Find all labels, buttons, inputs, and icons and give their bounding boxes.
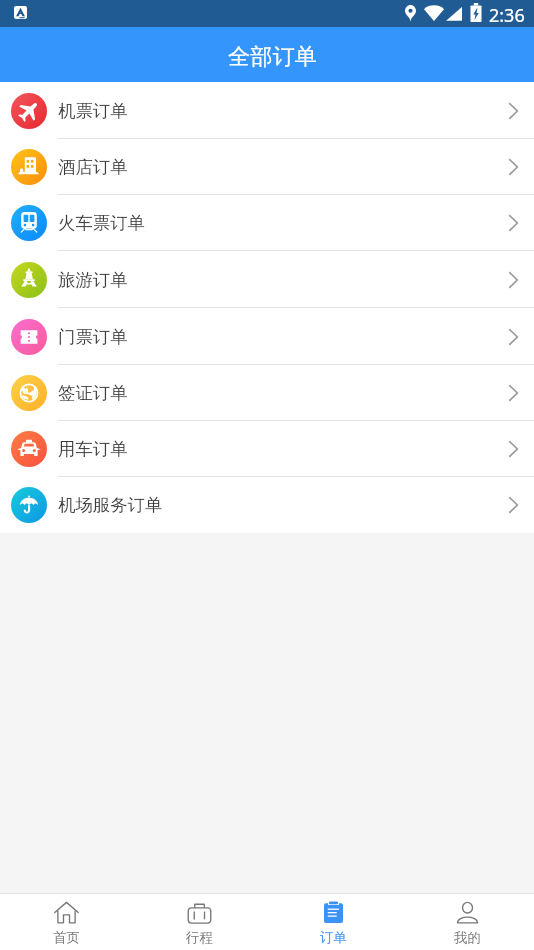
staticText: 全部订单 — [228, 43, 317, 71]
staticText: 用车订单 — [58, 438, 128, 460]
staticText: 门票订单 — [58, 326, 128, 348]
staticText: 订单 — [320, 929, 347, 946]
staticText: 2:36 — [489, 3, 525, 28]
staticText: 酒店订单 — [58, 156, 128, 178]
button[interactable]: 机票订单 — [0, 82, 534, 139]
button[interactable]: 旅游订单 — [0, 251, 534, 308]
staticText: 机场服务订单 — [58, 494, 163, 516]
staticText: 机票订单 — [58, 100, 128, 122]
button[interactable]: 酒店订单 — [0, 139, 534, 195]
staticText: 行程 — [186, 929, 213, 946]
staticText: 首页 — [53, 929, 80, 946]
button[interactable]: 行程 — [133, 894, 266, 950]
staticText: 签证订单 — [58, 382, 128, 404]
button[interactable]: 机场服务订单 — [0, 477, 534, 533]
button[interactable]: 火车票订单 — [0, 195, 534, 251]
button[interactable]: 用车订单 — [0, 421, 534, 477]
staticText: 我的 — [454, 929, 481, 946]
button[interactable]: 首页 — [0, 894, 133, 950]
button[interactable]: 签证订单 — [0, 365, 534, 421]
other: Wi-Fi — [424, 5, 444, 21]
other: Signal — [446, 5, 462, 21]
other: Location — [405, 5, 416, 22]
button[interactable]: 我的 — [400, 894, 534, 950]
other: Battery — [470, 3, 482, 22]
button[interactable]: 门票订单 — [0, 308, 534, 365]
staticText: 火车票订单 — [58, 212, 145, 234]
staticText: 旅游订单 — [58, 269, 128, 291]
button[interactable]: 订单 — [266, 894, 400, 950]
